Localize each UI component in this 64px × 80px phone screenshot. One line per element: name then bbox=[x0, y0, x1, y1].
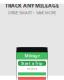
staticText: TRACK ANY MILEAGE bbox=[5, 2, 59, 9]
staticText: DRIVE SMART • SAVE MORE bbox=[8, 10, 56, 15]
staticText: Start a Trip bbox=[21, 61, 43, 66]
staticText: Recent bbox=[27, 67, 37, 71]
button[interactable]: Start a Trip bbox=[18, 61, 46, 66]
staticText: Mileage bbox=[24, 53, 39, 58]
